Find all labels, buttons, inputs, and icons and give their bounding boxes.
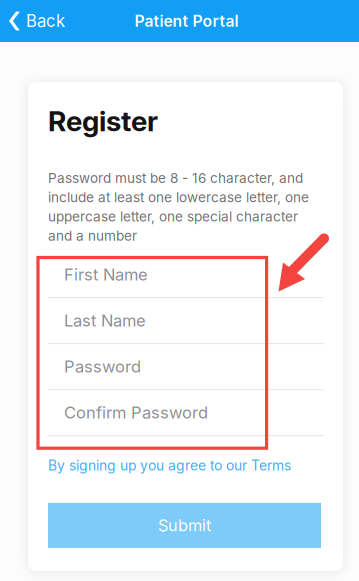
staticText: Last Name xyxy=(64,311,146,331)
button[interactable]: Back xyxy=(0,0,75,42)
button[interactable]: Password xyxy=(48,344,324,390)
staticText: Register xyxy=(48,104,158,138)
staticText: First Name xyxy=(64,265,148,285)
staticText: Submit xyxy=(158,515,211,535)
staticText: Patient Portal xyxy=(134,11,238,30)
staticText: Back xyxy=(26,11,65,31)
button[interactable]: First Name xyxy=(48,252,324,298)
staticText: Password must be 8 - 16 character, and i… xyxy=(48,170,309,244)
button[interactable]: Last Name xyxy=(48,298,324,344)
button[interactable]: Confirm Password xyxy=(48,390,324,436)
staticText: Password xyxy=(64,357,141,377)
button[interactable]: Submit xyxy=(48,503,321,548)
staticText: Confirm Password xyxy=(64,403,208,423)
staticText: By signing up you agree to our Terms xyxy=(48,457,291,474)
button[interactable]: By signing up you agree to our Terms xyxy=(28,436,291,474)
